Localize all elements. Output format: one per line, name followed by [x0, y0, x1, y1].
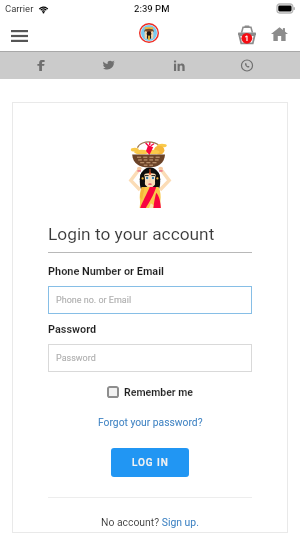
button[interactable]: Remember me: [105, 385, 196, 399]
button[interactable]: Share on Twitter: [75, 52, 143, 79]
staticText: Phone no. or Email: [56, 295, 132, 306]
staticText: Remember me: [124, 386, 194, 398]
button[interactable]: Home: [265, 18, 294, 50]
button[interactable]: Password: [48, 344, 252, 372]
button[interactable]: Forgot your password?: [98, 416, 203, 428]
staticText: Carrier: [5, 3, 34, 14]
button[interactable]: Menu: [4, 20, 35, 52]
button[interactable]: Cart, 1 item: [232, 18, 261, 50]
staticText: LOG IN: [132, 457, 169, 469]
staticText: 2:39 PM: [134, 3, 170, 14]
button[interactable]: Share on Facebook: [0, 52, 75, 79]
staticText: Password: [56, 353, 96, 364]
staticText: Login to your account: [48, 224, 215, 244]
button[interactable]: LOG IN: [111, 448, 189, 477]
button[interactable]: No account? Sign up.: [101, 516, 199, 528]
button[interactable]: Share on WhatsApp: [212, 52, 300, 79]
button[interactable]: Phone no. or Email: [48, 286, 252, 314]
staticText: Phone Number or Email: [48, 265, 164, 278]
button[interactable]: Logo: [139, 23, 159, 43]
staticText: Password: [48, 323, 97, 336]
button[interactable]: Share on LinkedIn: [143, 52, 212, 79]
